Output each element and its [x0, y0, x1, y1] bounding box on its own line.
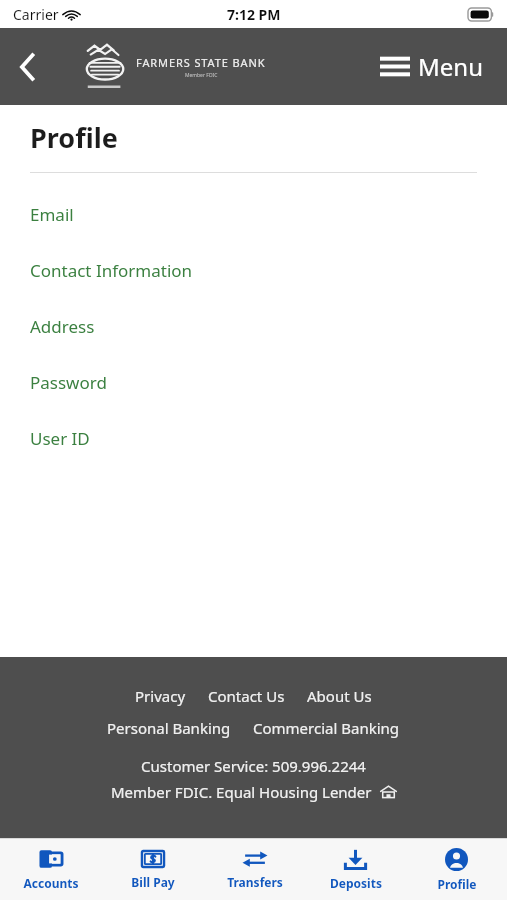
button[interactable]: Contact Information [0, 251, 507, 290]
staticText: Accounts [23, 875, 79, 891]
staticText: Customer Service: 509.996.2244 [141, 756, 366, 776]
staticText: Deposits [330, 875, 382, 891]
button[interactable]: Password [0, 363, 507, 402]
staticText: Bill Pay [131, 874, 175, 890]
staticText: Transfers [227, 874, 283, 890]
button[interactable]: Commercial Banking [251, 716, 402, 740]
staticText: Personal Banking [107, 718, 231, 738]
button[interactable]: Privacy [133, 684, 188, 708]
button[interactable]: Deposits [305, 843, 406, 897]
button[interactable]: About Us [305, 684, 374, 708]
staticText: Password [30, 371, 107, 394]
staticText: Contact Us [208, 686, 285, 706]
button[interactable]: Accounts [0, 842, 102, 897]
staticText: Contact Information [30, 259, 193, 282]
staticText: Profile [30, 119, 118, 156]
staticText: Privacy [135, 686, 186, 706]
button[interactable]: Transfers [204, 843, 305, 896]
staticText: Member FDIC [185, 72, 218, 79]
staticText: Member FDIC. Equal Housing Lender [111, 782, 372, 802]
staticText: Address [30, 315, 95, 338]
staticText: Menu [418, 50, 483, 83]
staticText: FARMERS STATE BANK [136, 55, 266, 70]
staticText: Carrier [13, 5, 59, 24]
button[interactable]: Back [0, 39, 56, 95]
staticText: Commercial Banking [253, 718, 400, 738]
staticText: Email [30, 203, 74, 226]
button[interactable]: Personal Banking [105, 716, 233, 740]
button[interactable]: Email [0, 195, 507, 234]
button[interactable]: Contact Us [206, 684, 287, 708]
button[interactable]: Menu [376, 42, 487, 91]
button[interactable]: Address [0, 307, 507, 346]
staticText: About Us [307, 686, 372, 706]
staticText: 7:12 PM [227, 5, 281, 24]
staticText: User ID [30, 427, 90, 450]
button[interactable]: Profile [406, 842, 507, 898]
button[interactable]: Bill Pay [102, 843, 204, 896]
button[interactable]: User ID [0, 419, 507, 458]
staticText: Profile [437, 876, 477, 892]
button[interactable]: Farmers State Bank home [82, 41, 266, 93]
